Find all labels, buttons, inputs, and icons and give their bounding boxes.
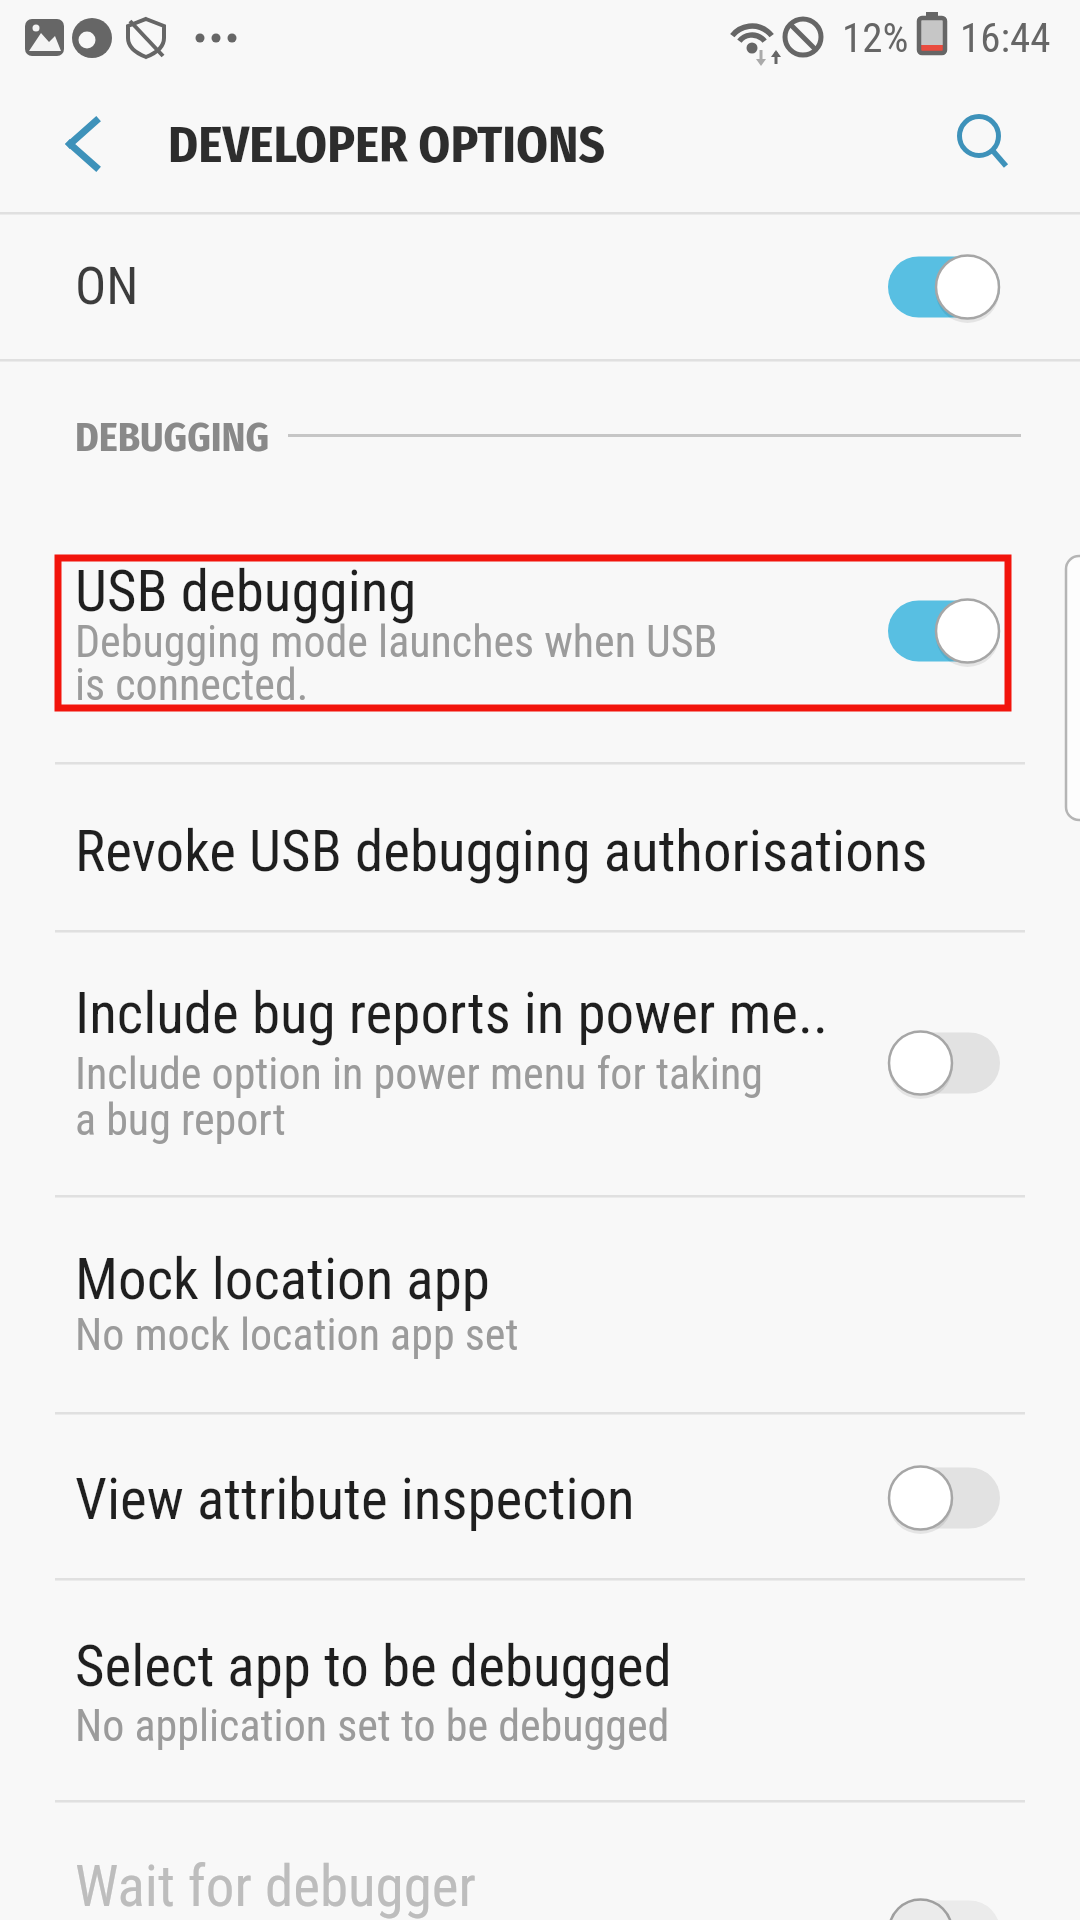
button[interactable] [0, 764, 1080, 930]
staticText: Mock location app [75, 1246, 490, 1313]
button[interactable] [0, 932, 1080, 1195]
staticText: No application set to be debugged [75, 1700, 670, 1752]
staticText: 16:44 [960, 14, 1051, 62]
staticText: Wait for debugger [75, 1853, 476, 1920]
staticText: is connected. [75, 659, 309, 711]
staticText: Revoke USB debugging authorisations [75, 818, 928, 885]
staticText: View attribute inspection [75, 1466, 635, 1533]
staticText: Include option in power menu for taking [75, 1048, 763, 1100]
staticText: USB debugging [75, 558, 417, 625]
staticText: Include bug reports in power me.. [75, 980, 829, 1047]
staticText: ON [75, 256, 139, 317]
staticText: DEVELOPER OPTIONS [168, 114, 606, 175]
button[interactable] [0, 1197, 1080, 1412]
staticText: Debugging mode launches when USB [75, 616, 718, 668]
button[interactable] [935, 95, 1030, 185]
staticText: a bug report [75, 1094, 286, 1146]
button[interactable] [0, 1414, 1080, 1578]
staticText: Select app to be debugged [75, 1633, 672, 1700]
button[interactable] [0, 1580, 1080, 1800]
staticText: DEBUGGING [75, 414, 270, 462]
staticText: 12% [842, 14, 909, 62]
staticText: No mock location app set [75, 1309, 519, 1361]
button[interactable] [0, 500, 1080, 762]
button[interactable] [0, 1802, 1080, 1920]
button[interactable] [40, 100, 130, 190]
button[interactable] [0, 214, 1080, 359]
